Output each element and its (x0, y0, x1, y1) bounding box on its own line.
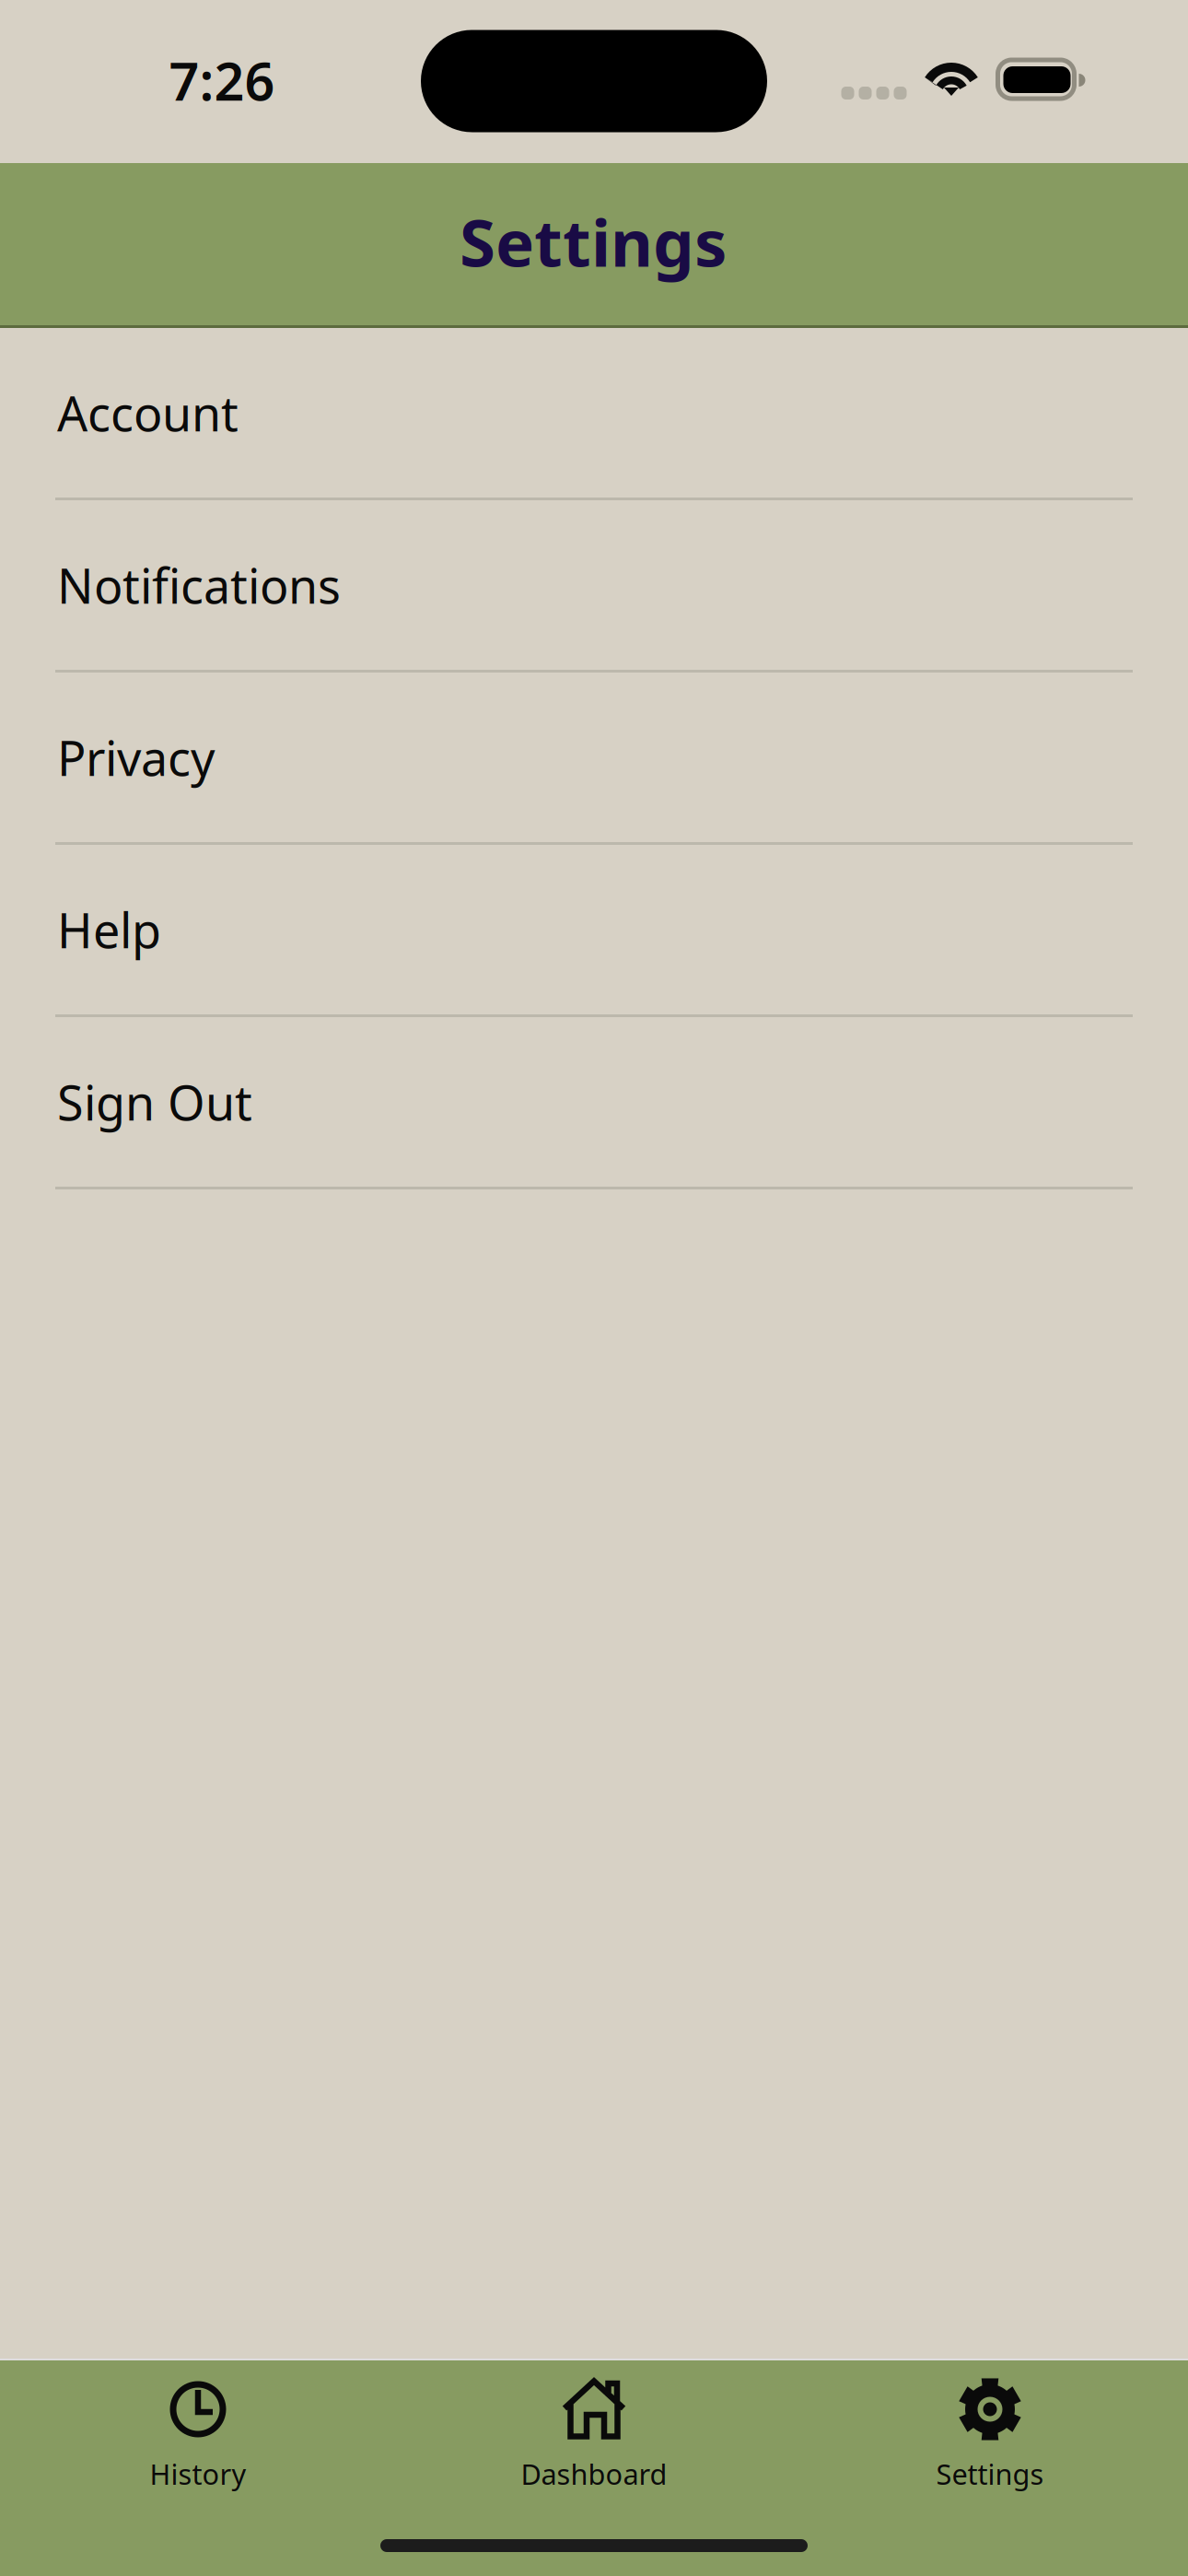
staticText: Sign Out (57, 1070, 252, 1134)
button[interactable]: Dashboard (396, 2360, 792, 2545)
button[interactable]: Help (0, 845, 1188, 1017)
staticText: Account (57, 381, 239, 445)
button[interactable]: History (0, 2360, 396, 2545)
button[interactable]: Notifications (0, 500, 1188, 673)
button[interactable]: Sign Out (0, 1017, 1188, 1189)
staticText: Settings (936, 2455, 1044, 2492)
staticText: History (150, 2455, 246, 2492)
button[interactable]: Privacy (0, 673, 1188, 845)
button[interactable]: Settings (792, 2360, 1188, 2545)
staticText: Privacy (57, 726, 215, 789)
staticText: Notifications (57, 553, 341, 617)
button[interactable]: Account (0, 328, 1188, 500)
staticText: Settings (460, 198, 727, 285)
staticText: Dashboard (521, 2455, 667, 2492)
staticText: 7:26 (169, 45, 275, 115)
staticText: Help (57, 898, 161, 961)
